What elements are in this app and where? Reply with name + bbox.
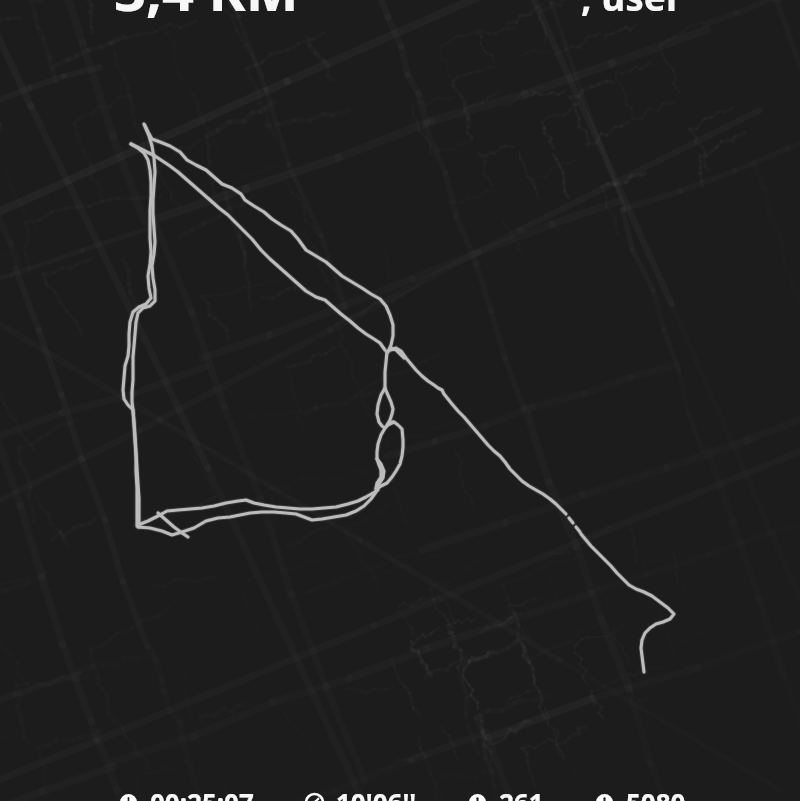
button[interactable]: 261 kilocalories bbox=[443, 785, 570, 801]
staticText: 5080 bbox=[626, 785, 686, 801]
staticText: , user bbox=[581, 0, 683, 21]
button[interactable]: Duration 00:25:07 bbox=[94, 785, 280, 801]
staticText: 3,4 KM bbox=[114, 0, 299, 27]
button[interactable]: Open full screen route map bbox=[0, 0, 800, 801]
staticText: 261 bbox=[499, 785, 544, 801]
staticText: 10'06'' bbox=[336, 785, 417, 801]
button[interactable]: , user bbox=[581, 0, 683, 21]
button[interactable]: 3,4 KM bbox=[114, 0, 299, 27]
button[interactable]: 5080 steps bbox=[570, 785, 712, 801]
staticText: 00:25:07 bbox=[150, 785, 254, 801]
button[interactable]: Average pace 10 minutes 6 seconds per km bbox=[280, 785, 443, 801]
